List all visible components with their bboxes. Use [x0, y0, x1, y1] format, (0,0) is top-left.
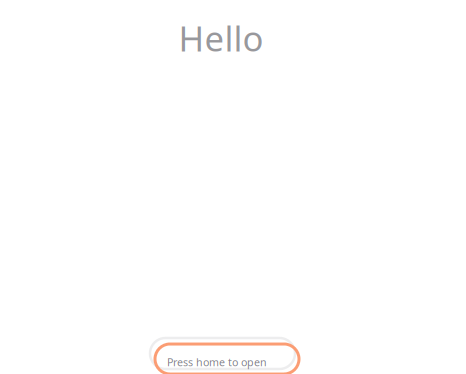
- button[interactable]: Press home to open: [155, 344, 299, 374]
- staticText: Press home to open: [167, 355, 267, 369]
- staticText: Hello: [178, 15, 263, 61]
